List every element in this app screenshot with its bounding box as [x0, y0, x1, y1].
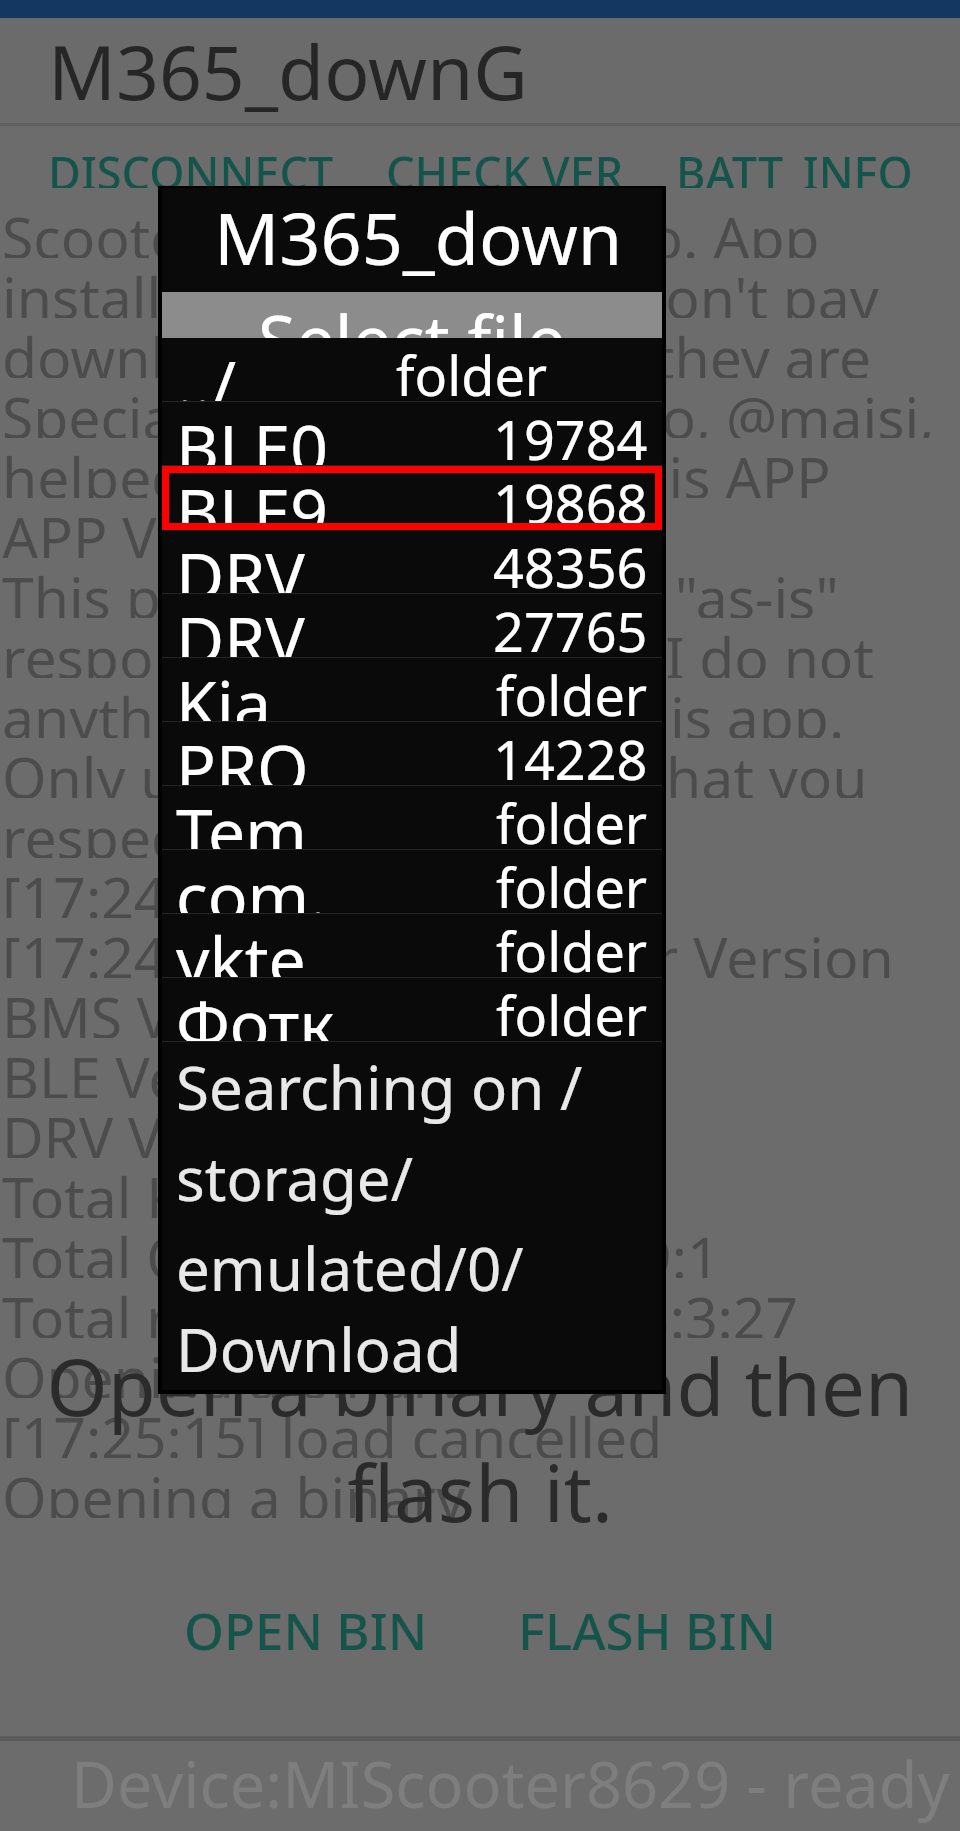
staticText: DRV155-1586367666.zip [176, 530, 334, 594]
button[interactable]: BLE090_PRO.zip [162, 402, 662, 466]
staticText: CHECK VER [386, 142, 624, 188]
button[interactable]: OPEN BIN [154, 1595, 458, 1664]
staticText: 14228 [493, 722, 648, 786]
staticText: 48356 [493, 530, 648, 594]
staticText: This program is released "as-is" without… [2, 558, 960, 618]
staticText: Opening a binary [2, 1338, 466, 1398]
staticText: folder [496, 850, 648, 914]
staticText: Temp [176, 786, 336, 850]
staticText: vktemp [176, 914, 336, 978]
staticText: DRV155GONKA.zip [176, 594, 334, 658]
staticText: PRO_BLE074_update2.zip [176, 722, 334, 786]
button[interactable]: Temp [162, 786, 662, 850]
staticText: DISCONNECT [48, 142, 334, 188]
staticText: anything you do using this app. [2, 678, 845, 738]
staticText: com.bitrix24.android [176, 850, 336, 914]
staticText: OPEN BIN [184, 1595, 428, 1664]
staticText: folder [496, 914, 648, 978]
staticText: FLASH BIN [518, 1595, 777, 1664]
staticText: responsibility or liability. I do not ta… [2, 618, 960, 678]
staticText: BLE090_PRO.zip [176, 402, 334, 466]
staticText: Only use it if you know what you are doi… [2, 738, 960, 798]
button[interactable]: DISCONNECT [22, 142, 360, 188]
staticText: [17:25:15] load cancelled [2, 1398, 663, 1458]
staticText: Searching on /storage/emulated/0/ [176, 1046, 662, 1308]
staticText: Kia Stinger GT AWD_autosoftos.com [176, 658, 336, 722]
staticText: [17:24:52] Connected to:MIScooter8629 [2, 858, 960, 918]
staticText: Select file [258, 292, 566, 338]
button[interactable]: FLASH BIN [488, 1595, 807, 1664]
staticText: DRV Ver:155 [2, 1098, 330, 1158]
staticText: Download [176, 1308, 462, 1390]
staticText: Scooter flasher by Camilo. App based on … [2, 198, 960, 258]
button[interactable]: vktemp [162, 914, 662, 978]
button[interactable]: Фотки [162, 978, 662, 1042]
staticText: BMS Ver:126 [2, 978, 339, 1038]
staticText: respect the law [2, 798, 409, 858]
button[interactable]: DRV155GONKA.zip [162, 594, 662, 658]
button[interactable]: com.bitrix24.android [162, 850, 662, 914]
staticText: M365_downG [48, 20, 528, 122]
staticText: M365_downG [214, 188, 662, 292]
staticText: folder [496, 978, 648, 1042]
button[interactable]: BLE90.zip [162, 466, 662, 530]
staticText: 27765 [493, 594, 648, 658]
staticText: Total riding Time H:M:S:3:3:27 [2, 1278, 799, 1338]
staticText: BATT_INFO [676, 142, 913, 188]
staticText: BLE90.zip [176, 466, 334, 530]
staticText: Фотки [176, 978, 336, 1042]
staticText: BLE Ver:90 [2, 1038, 285, 1098]
staticText: folder [496, 786, 648, 850]
staticText: Total On Time H:M:S:4:39:1 [2, 1218, 720, 1278]
button[interactable]: PRO_BLE074_update2.zip [162, 722, 662, 786]
staticText: downloaded separately, they are not incl… [2, 318, 960, 378]
button[interactable]: DRV155-1586367666.zip [162, 530, 662, 594]
staticText: helped me developing this APP [2, 438, 831, 498]
staticText: folder [496, 658, 648, 722]
staticText: Opening a binary [2, 1458, 466, 1518]
button[interactable]: ../ [162, 338, 662, 402]
staticText: Device:MIScooter8629 - ready [71, 1741, 950, 1825]
button[interactable]: BATT_INFO [650, 142, 939, 188]
staticText: folder [396, 338, 548, 402]
button[interactable]: Kia Stinger GT AWD_autosoftos.com [162, 658, 662, 722]
staticText: Special thanks to @buhho, @majsi, @Lothe… [2, 378, 960, 438]
button[interactable]: CHECK VER [360, 142, 650, 188]
staticText: ../ [176, 338, 236, 402]
staticText: APP V19 [2, 498, 222, 558]
staticText: installation totally free, don't pay any… [2, 258, 960, 318]
staticText: 19868 [493, 466, 648, 530]
staticText: 19784 [493, 402, 648, 466]
staticText: Open a binary and then flash it. [0, 1333, 960, 1545]
staticText: Total Km:50 Km [2, 1158, 419, 1218]
staticText: [17:24:59] Asking Scooter Version [2, 918, 894, 978]
